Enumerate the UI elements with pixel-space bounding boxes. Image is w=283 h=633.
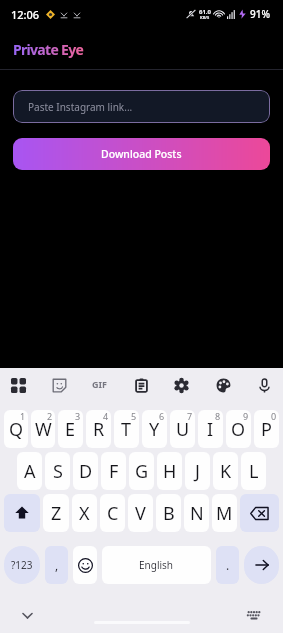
staticText: . [226, 557, 230, 573]
staticText: Paste Instagram link... [28, 100, 133, 114]
button[interactable]: English [102, 546, 211, 584]
button[interactable]: Z [43, 494, 69, 532]
button[interactable]: Emoji [73, 546, 97, 584]
staticText: T [121, 417, 132, 442]
staticText: , [55, 557, 59, 573]
button[interactable]: GIF [86, 372, 112, 398]
staticText: 3 [75, 410, 81, 422]
staticText: Q [9, 417, 24, 442]
button[interactable]: Paste Instagram link... [13, 90, 270, 123]
staticText: B [163, 501, 175, 526]
staticText: GIF [92, 378, 107, 390]
staticText: 9 [243, 410, 249, 422]
staticText: F [109, 459, 119, 484]
staticText: V [135, 501, 146, 526]
button[interactable]: U [170, 410, 195, 448]
staticText: 2 [47, 410, 53, 422]
button[interactable]: A [17, 452, 42, 490]
staticText: 0 [271, 410, 277, 422]
staticText: U [176, 417, 190, 442]
staticText: M [216, 501, 233, 526]
button[interactable]: Y [142, 410, 167, 448]
staticText: 5 [131, 410, 137, 422]
staticText: X [79, 501, 90, 526]
button[interactable]: B [156, 494, 181, 532]
staticText: ?123 [11, 558, 33, 572]
staticText: O [231, 417, 246, 442]
button[interactable]: V [128, 494, 153, 532]
button[interactable]: D [73, 452, 98, 490]
button[interactable]: R [86, 410, 111, 448]
staticText: I [207, 417, 214, 442]
staticText: 8 [215, 410, 221, 422]
staticText: D [79, 459, 93, 484]
button[interactable]: ?123 [4, 546, 40, 584]
button[interactable]: G [129, 452, 154, 490]
staticText: Download Posts [101, 147, 182, 161]
button[interactable]: Download Posts [13, 138, 270, 170]
staticText: 1 [20, 410, 26, 422]
staticText: 12:06 [11, 7, 40, 22]
button[interactable]: K [213, 452, 238, 490]
button[interactable]: H [157, 452, 182, 490]
button[interactable]: P [254, 410, 279, 448]
staticText: 61.0 [199, 8, 211, 16]
button[interactable]: M [212, 494, 237, 532]
button[interactable]: Clipboard [128, 372, 154, 398]
button[interactable]: Voice input [251, 372, 277, 398]
button[interactable]: O [226, 410, 251, 448]
staticText: KB/S [200, 15, 210, 20]
button[interactable]: W [31, 410, 55, 448]
button[interactable]: F [101, 452, 126, 490]
staticText: L [249, 459, 259, 484]
staticText: A [24, 459, 36, 484]
staticText: E [65, 417, 76, 442]
button[interactable]: Stickers [46, 372, 72, 398]
staticText: 6 [159, 410, 165, 422]
staticText: W [35, 417, 52, 442]
staticText: Private Eye [13, 40, 84, 59]
button[interactable]: S [45, 452, 70, 490]
button[interactable]: Apps [5, 372, 31, 398]
staticText: Y [149, 417, 160, 442]
button[interactable]: Theme [210, 372, 236, 398]
staticText: S [53, 459, 63, 484]
button[interactable]: Backspace [240, 494, 279, 532]
staticText: J [195, 459, 200, 484]
staticText: 4 [103, 410, 109, 422]
button[interactable]: , [45, 546, 68, 584]
button[interactable]: . [216, 546, 239, 584]
staticText: Z [51, 501, 62, 526]
button[interactable]: Enter [244, 546, 279, 584]
button[interactable]: C [100, 494, 125, 532]
button[interactable]: L [241, 452, 266, 490]
button[interactable]: Q [4, 410, 28, 448]
staticText: 91% [250, 7, 270, 21]
button[interactable]: X [72, 494, 97, 532]
button[interactable]: Switch keyboard [241, 602, 267, 628]
staticText: P [261, 417, 272, 442]
button[interactable]: T [114, 410, 139, 448]
button[interactable]: Hide keyboard [14, 602, 40, 628]
staticText: G [135, 459, 149, 484]
staticText: K [220, 459, 232, 484]
staticText: N [190, 501, 204, 526]
button[interactable]: I [198, 410, 223, 448]
staticText: R [93, 417, 105, 442]
button[interactable]: Settings [168, 372, 194, 398]
staticText: C [107, 501, 119, 526]
staticText: 7 [187, 410, 193, 422]
staticText: H [163, 459, 177, 484]
button[interactable]: J [185, 452, 210, 490]
button[interactable]: E [58, 410, 83, 448]
button[interactable]: N [184, 494, 209, 532]
staticText: English [139, 558, 174, 572]
button[interactable]: Shift [4, 494, 40, 532]
